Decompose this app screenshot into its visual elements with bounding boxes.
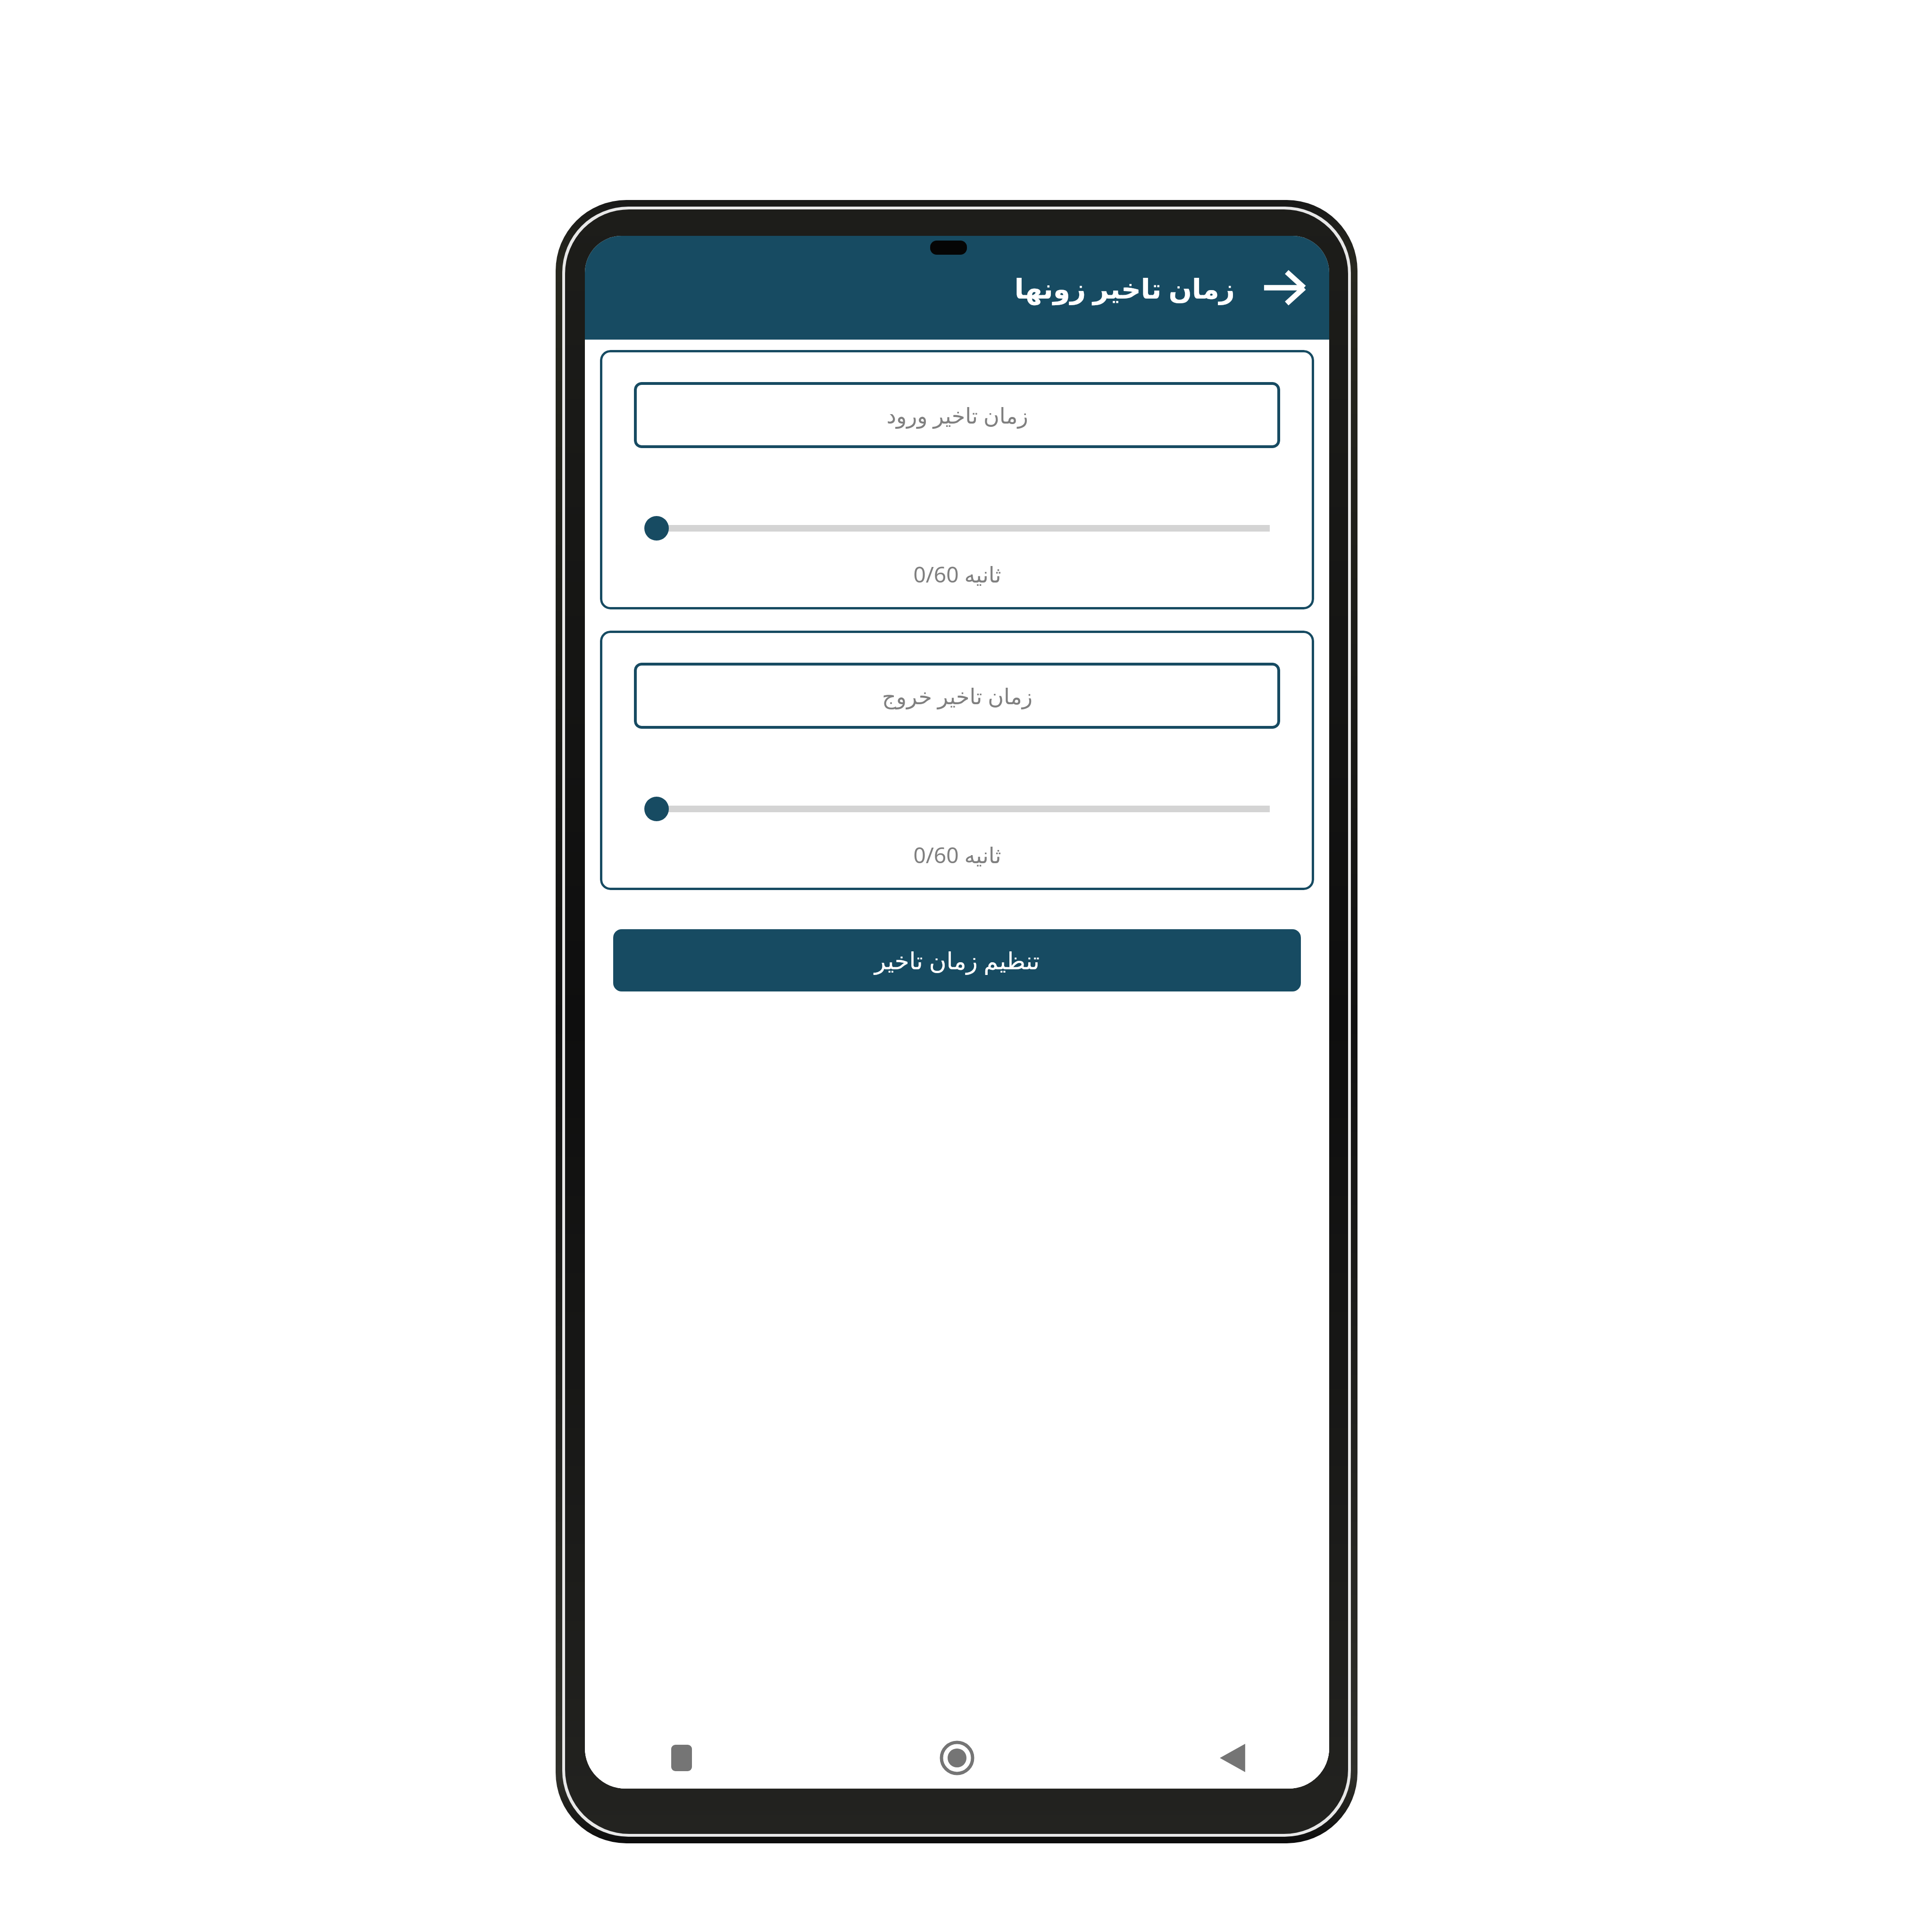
staticText: تنظیم زمان تاخیر: [874, 944, 1040, 976]
button[interactable]: Delay seconds slider: [644, 790, 1270, 828]
button[interactable]: زمان تاخیر ورود: [634, 382, 1280, 448]
button[interactable]: Back: [1207, 1732, 1258, 1784]
button[interactable]: Back: [1257, 260, 1312, 316]
button[interactable]: Home: [931, 1732, 983, 1784]
button[interactable]: Recent apps: [656, 1732, 708, 1784]
button[interactable]: تنظیم زمان تاخیر: [613, 929, 1301, 991]
staticText: زمان تاخیر زونها: [1014, 269, 1235, 307]
button[interactable]: زمان تاخیر خروج: [634, 663, 1280, 729]
staticText: 0/60 ثانیه: [913, 559, 1001, 589]
staticText: زمان تاخیر خروج: [882, 681, 1033, 711]
staticText: 0/60 ثانیه: [913, 840, 1001, 870]
staticText: زمان تاخیر ورود: [886, 400, 1028, 430]
button[interactable]: Delay seconds slider: [644, 509, 1270, 547]
